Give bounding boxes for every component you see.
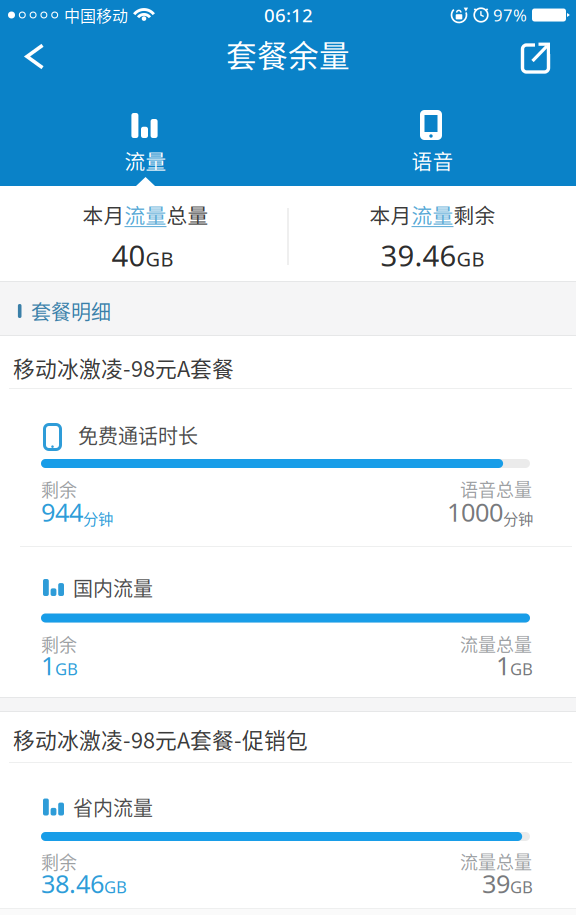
staticText: 39GB <box>482 867 533 900</box>
staticText: 流量总量 <box>460 848 532 875</box>
staticText: 语音总量 <box>460 476 532 502</box>
staticText: 语音 <box>411 145 453 175</box>
staticText: 06:12 <box>264 2 313 28</box>
staticText: 总量 <box>166 199 208 229</box>
staticText: 1000分钟 <box>447 495 533 529</box>
staticText: 剩余 <box>41 631 77 657</box>
staticText: 97% <box>493 4 527 26</box>
staticText: 剩余 <box>41 848 77 875</box>
staticText: 套餐余量 <box>226 32 350 76</box>
staticText: 中国移动 <box>64 3 128 27</box>
button[interactable] <box>507 27 566 86</box>
staticText: 40GB <box>111 235 173 274</box>
staticText: 剩余 <box>453 199 495 229</box>
staticText: 移动冰激凌-98元A套餐 <box>13 352 234 383</box>
staticText: 本月 <box>369 199 411 229</box>
staticText: 流量总量 <box>460 631 532 657</box>
staticText: 剩余 <box>41 476 77 502</box>
staticText: 省内流量 <box>73 792 153 821</box>
staticText: 国内流量 <box>73 573 153 602</box>
button[interactable]: 语音 <box>288 95 576 186</box>
staticText: 移动冰激凌-98元A套餐-促销包 <box>13 723 308 755</box>
staticText: 944分钟 <box>41 495 113 529</box>
button[interactable] <box>2 28 62 85</box>
staticText: 1GB <box>41 649 78 682</box>
staticText: 38.46GB <box>41 867 127 900</box>
staticText: 流量 <box>124 199 166 229</box>
staticText: 39.46GB <box>380 235 484 274</box>
button[interactable]: 流量 <box>0 95 288 186</box>
staticText: 免费通话时长 <box>78 420 198 449</box>
staticText: 1GB <box>496 649 533 682</box>
staticText: 流量 <box>124 145 166 175</box>
staticText: 套餐明细 <box>31 296 111 325</box>
staticText: 流量 <box>411 199 453 229</box>
staticText: 本月 <box>82 199 124 229</box>
